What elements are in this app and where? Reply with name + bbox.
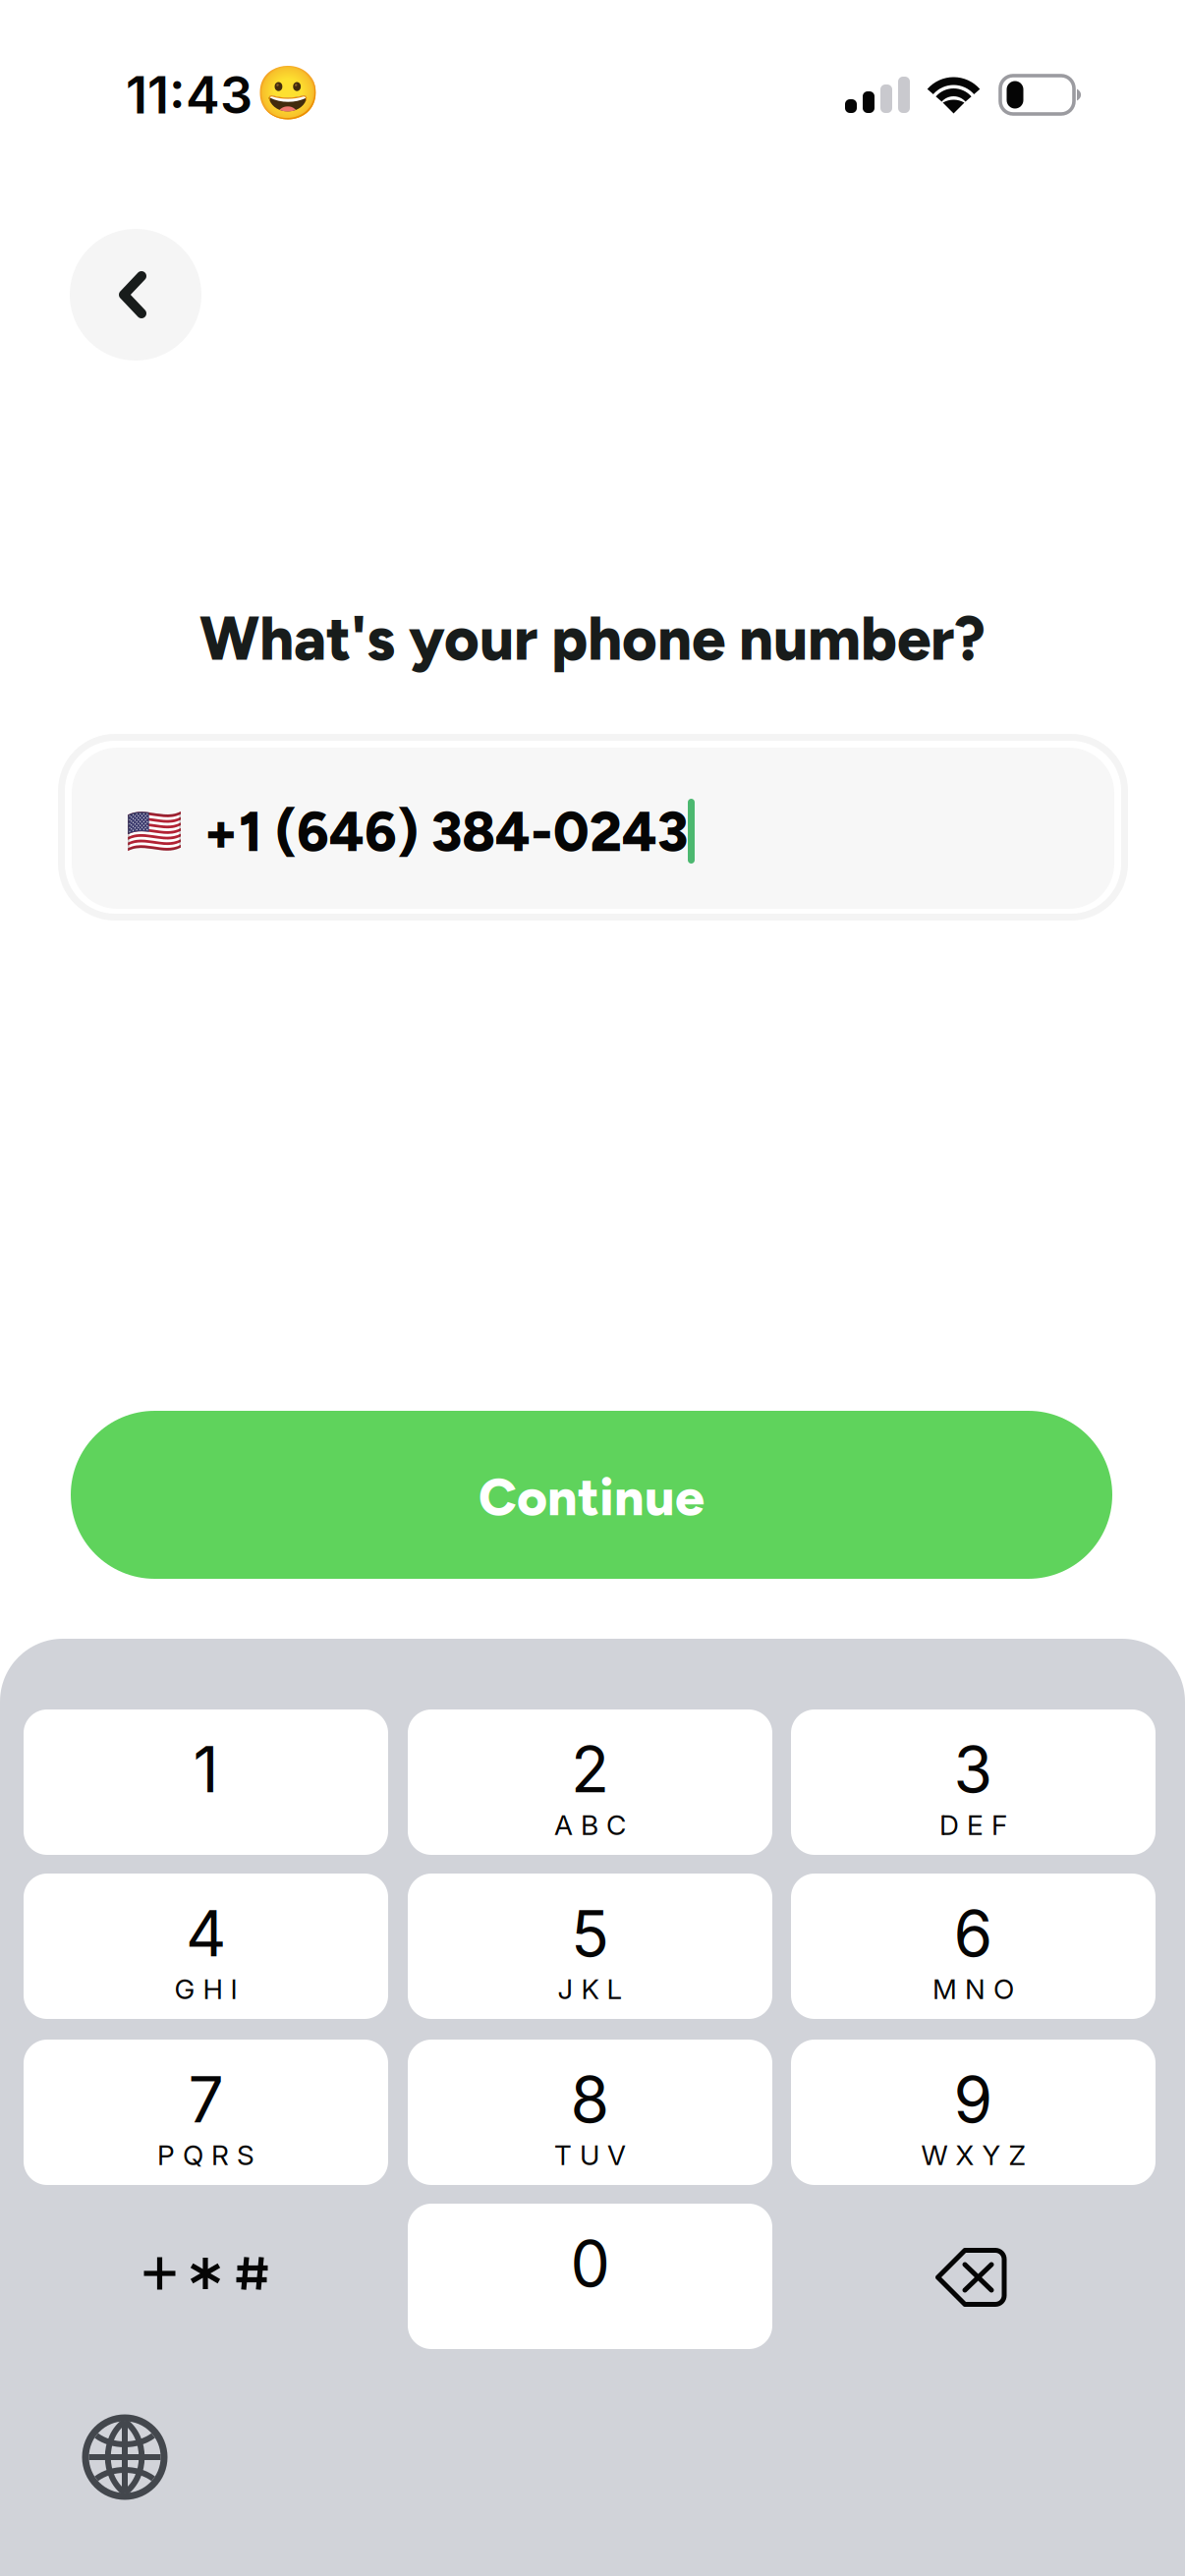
staticText: 6 (954, 1895, 993, 1971)
staticText: 😀 (255, 63, 320, 124)
button[interactable]: 4 (24, 1874, 388, 2019)
staticText: T U V (554, 2138, 626, 2172)
staticText: W X Y Z (921, 2138, 1025, 2172)
staticText: A B C (554, 1808, 626, 1842)
button[interactable]: Continue (71, 1411, 1112, 1579)
staticText: J K L (558, 1972, 622, 2006)
staticText: 3 (954, 1731, 993, 1807)
button[interactable]: 8 (408, 2040, 772, 2185)
button[interactable]: Back (70, 229, 201, 361)
staticText: 9 (954, 2061, 993, 2138)
button[interactable]: Delete (791, 2204, 1156, 2349)
staticText: D E F (939, 1808, 1007, 1842)
button[interactable]: Plus, star, pound (24, 2204, 388, 2349)
button[interactable]: 6 (791, 1874, 1156, 2019)
staticText: M N O (932, 1972, 1014, 2006)
button[interactable]: Change keyboard (85, 2418, 164, 2496)
button[interactable]: 9 (791, 2040, 1156, 2185)
staticText: 5 (571, 1895, 609, 1971)
button[interactable]: 5 (408, 1874, 772, 2019)
staticText: 7 (188, 2061, 224, 2138)
staticText: 4 (186, 1895, 226, 1971)
staticText: G H I (174, 1972, 237, 2006)
staticText: What's your phone number? (199, 602, 986, 675)
button[interactable]: 3 (791, 1709, 1156, 1855)
staticText: 2 (571, 1731, 609, 1807)
staticText: 1 (193, 1731, 219, 1807)
staticText: 🇺🇸 (126, 805, 183, 858)
button[interactable]: 0 (408, 2204, 772, 2349)
button[interactable]: 7 (24, 2040, 388, 2185)
button[interactable]: 1 (24, 1709, 388, 1855)
staticText: P Q R S (157, 2138, 254, 2172)
staticText: 11:43 (126, 64, 253, 126)
staticText: 0 (570, 2226, 610, 2302)
staticText: 8 (570, 2061, 610, 2138)
staticText: +1 (646) 384-0243 (203, 799, 688, 865)
staticText: Continue (479, 1465, 705, 1528)
button[interactable]: 2 (408, 1709, 772, 1855)
